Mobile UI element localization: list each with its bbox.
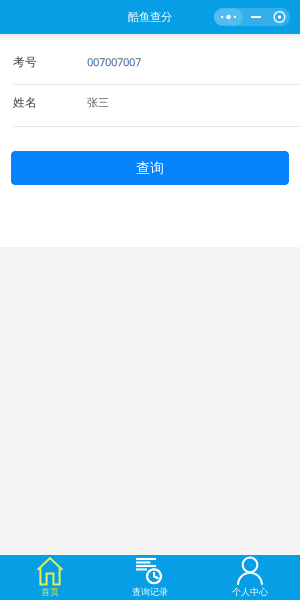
- staticText: 张三: [87, 95, 109, 109]
- staticText: 查询记录: [132, 586, 168, 598]
- staticText: 酷鱼查分: [128, 10, 172, 24]
- staticText: 姓名: [13, 95, 37, 110]
- staticText: 首页: [41, 586, 59, 598]
- button[interactable]: Close: [269, 8, 290, 26]
- button[interactable]: 个人中心: [200, 555, 300, 600]
- staticText: 个人中心: [232, 586, 268, 598]
- button[interactable]: Minimise: [243, 8, 269, 26]
- staticText: 考号: [13, 55, 37, 69]
- button[interactable]: 查询记录: [100, 555, 200, 600]
- button[interactable]: More: [214, 8, 243, 25]
- button[interactable]: 查询: [11, 151, 289, 185]
- staticText: 007007007: [87, 54, 141, 70]
- button[interactable]: 首页: [0, 555, 100, 600]
- staticText: 查询: [136, 159, 164, 177]
